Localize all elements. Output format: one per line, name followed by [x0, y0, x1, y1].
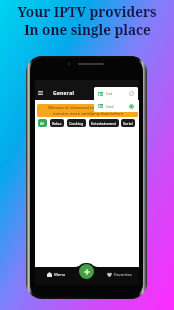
button[interactable]: Grid: [94, 100, 138, 112]
button[interactable]: Entertainment: [89, 119, 119, 127]
staticText: List: [106, 91, 112, 96]
button[interactable]: Add: [79, 264, 94, 279]
staticText: Relax: [52, 121, 62, 126]
button[interactable]: Minutes of enhanced experience for you,: [37, 104, 138, 117]
button[interactable]: Favorites: [107, 268, 132, 281]
button[interactable]: Serial: [121, 119, 135, 127]
staticText: Grid: [106, 104, 114, 109]
button[interactable]: Relax: [50, 119, 64, 127]
staticText: Menu: [54, 272, 66, 278]
button[interactable]: Open navigation menu: [35, 88, 45, 97]
staticText: Minutes of enhanced experience for you,: [48, 105, 127, 111]
button[interactable]: Menu: [47, 268, 66, 281]
staticText: Cooking: [69, 121, 84, 126]
staticText: Your IPTV providers: [17, 3, 157, 21]
staticText: Serial: [123, 121, 133, 126]
staticText: General: [53, 90, 75, 97]
button[interactable]: List: [94, 87, 138, 100]
staticText: Favorites: [114, 272, 132, 278]
staticText: All: [40, 121, 45, 126]
staticText: minutes more satisfying than before: [53, 111, 123, 117]
staticText: Entertainment: [91, 121, 117, 126]
button[interactable]: All: [38, 119, 47, 127]
button[interactable]: Cooking: [67, 119, 86, 127]
staticText: In one single place: [24, 21, 151, 39]
